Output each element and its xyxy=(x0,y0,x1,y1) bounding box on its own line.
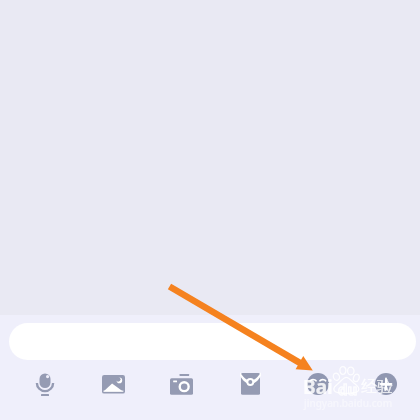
staticText: 经验 xyxy=(361,377,393,397)
button[interactable]: Emoji xyxy=(289,355,347,413)
button[interactable]: Camera xyxy=(152,355,210,413)
button[interactable]: Voice input xyxy=(16,355,74,413)
staticText: Bai xyxy=(303,374,333,400)
button[interactable]: Add xyxy=(357,355,415,413)
staticText: du xyxy=(338,379,358,399)
button[interactable]: Mail xyxy=(221,355,279,413)
button[interactable] xyxy=(9,323,416,360)
button[interactable]: Photos xyxy=(84,355,142,413)
